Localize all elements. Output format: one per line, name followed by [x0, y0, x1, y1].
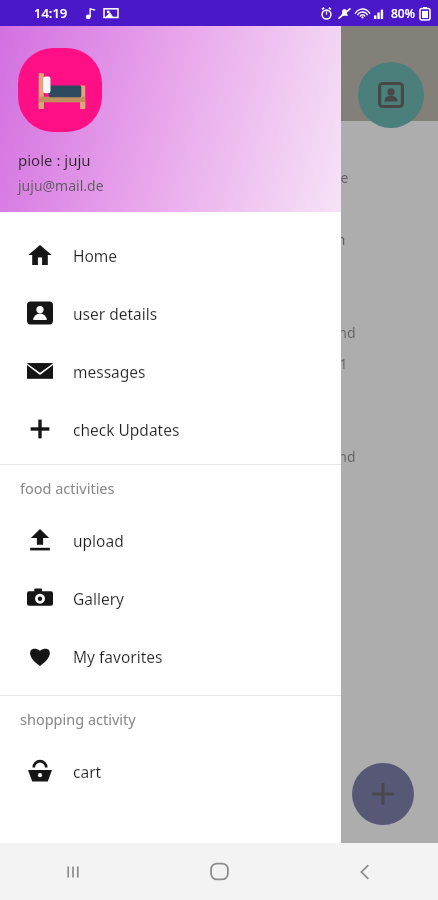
button[interactable]: Gallery: [0, 569, 341, 627]
staticText: 3, 2021: [300, 354, 348, 373]
staticText: upload: [73, 530, 124, 551]
button[interactable]: Add: [352, 763, 414, 825]
button[interactable]: Profile picture: [18, 48, 102, 132]
staticText: messages: [73, 361, 146, 382]
staticText: piole : juju: [18, 150, 91, 170]
staticText: food activities: [20, 478, 115, 498]
staticText: My favorites: [73, 646, 163, 667]
button[interactable]: user details: [0, 284, 341, 342]
button[interactable]: Recents: [0, 843, 146, 900]
button[interactable]: Home: [146, 843, 292, 900]
staticText: Home: [73, 245, 118, 266]
button[interactable]: Back: [292, 843, 438, 900]
staticText: gemünd: [300, 447, 356, 466]
staticText: cart: [73, 761, 102, 782]
button[interactable]: check Updates: [0, 400, 341, 458]
staticText: juju@mail.de: [18, 176, 104, 195]
staticText: shopping activity: [20, 709, 136, 729]
staticText: 80%: [391, 5, 415, 21]
button[interactable]: Home: [0, 226, 341, 284]
staticText: mail.de: [300, 168, 349, 187]
staticText: check Updates: [73, 419, 180, 440]
staticText: user details: [73, 303, 158, 324]
staticText: Gallery: [73, 588, 125, 609]
staticText: gemünd: [300, 323, 356, 342]
button[interactable]: My favorites: [0, 627, 341, 685]
button[interactable]: messages: [0, 342, 341, 400]
button[interactable]: upload: [0, 511, 341, 569]
button[interactable]: cart: [0, 742, 341, 800]
staticText: 14:19: [34, 4, 68, 22]
staticText: african: [300, 230, 346, 249]
